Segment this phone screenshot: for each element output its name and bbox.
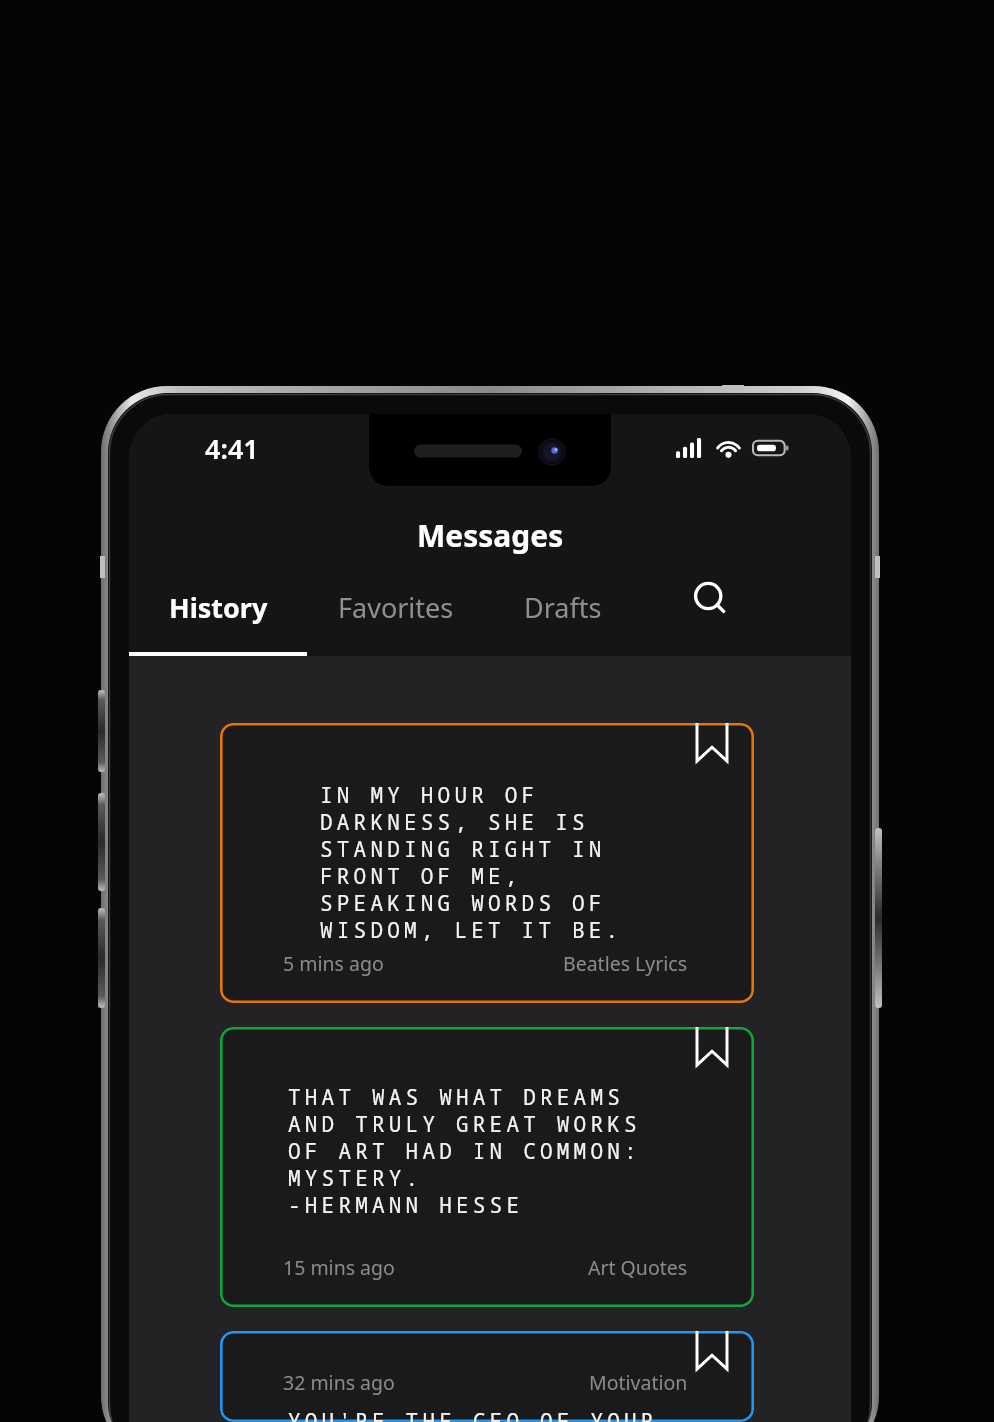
button[interactable]: Bookmark [690,1027,734,1083]
staticText: WISDOM, LET IT BE. [320,916,623,943]
staticText: Messages [417,515,564,556]
staticText: THAT WAS WHAT DREAMS [288,1083,624,1110]
staticText: Beatles Lyrics [563,950,688,977]
staticText: History [169,589,268,626]
button[interactable]: Drafts [484,566,641,656]
staticText: OF ART HAD IN COMMON: [288,1137,641,1164]
staticText: YOU'RE THE CEO OF YOUR [288,1407,658,1422]
staticText: Motivation [589,1369,688,1396]
button[interactable]: Search [641,566,781,656]
staticText: AND TRULY GREAT WORKS [288,1110,641,1137]
staticText: MYSTERY. [288,1164,423,1191]
staticText: 5 mins ago [283,950,384,977]
staticText: DARKNESS, SHE IS [320,808,589,835]
staticText: FRONT OF ME, [320,862,522,889]
button[interactable]: History [129,566,307,656]
staticText: IN MY HOUR OF [320,781,539,808]
button[interactable]: IN MY HOUR OF [220,723,754,1003]
button[interactable]: Favorites [307,566,484,656]
staticText: STANDING RIGHT IN [320,835,606,862]
button[interactable]: YOU'RE THE CEO OF YOUR [220,1331,754,1422]
staticText: Art Quotes [588,1254,688,1281]
staticText: 4:41 [205,430,259,467]
staticText: 15 mins ago [283,1254,395,1281]
button[interactable]: Bookmark [690,723,734,779]
staticText: Drafts [524,589,602,626]
staticText: 32 mins ago [283,1369,395,1396]
staticText: -HERMANN HESSE [288,1191,524,1218]
button[interactable]: Bookmark [690,1331,734,1387]
staticText: SPEAKING WORDS OF [320,889,606,916]
button[interactable]: THAT WAS WHAT DREAMS [220,1027,754,1307]
staticText: Favorites [338,589,454,626]
